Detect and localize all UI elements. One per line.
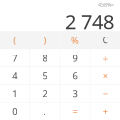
staticText: − [103,87,108,100]
button[interactable]: 7 [0,49,30,67]
staticText: 2 748 [65,8,114,35]
button[interactable]: × [90,67,120,84]
button[interactable]: 8 [30,49,60,67]
button[interactable]: ( [0,31,30,49]
button[interactable]: 9 [60,49,90,67]
staticText: × [103,70,108,82]
button[interactable]: − [90,85,120,102]
staticText: 7 [12,52,17,64]
button[interactable]: 6 [60,67,90,84]
staticText: . [43,105,46,118]
staticText: 2 [42,87,47,100]
button[interactable]: . [30,103,60,120]
staticText: ) [43,34,46,46]
button[interactable]: + [90,103,120,120]
button[interactable]: 2 [30,85,60,102]
staticText: ÷ [103,52,108,64]
button[interactable]: 1 [0,85,30,102]
staticText: 0 [12,105,17,118]
staticText: + [103,105,108,118]
button[interactable]: ) [30,31,60,49]
staticText: 458%= [98,1,114,8]
button[interactable]: = [60,103,90,120]
staticText: 1 [12,87,17,100]
staticText: 3 [73,87,78,100]
button[interactable]: % [60,31,90,49]
staticText: 9 [73,52,78,64]
button[interactable]: 0 [0,103,30,120]
staticText: 4 [12,70,17,82]
staticText: C [103,35,108,45]
staticText: ( [13,34,16,46]
button[interactable]: 5 [30,67,60,84]
staticText: 5 [42,70,47,82]
button[interactable]: 3 [60,85,90,102]
button[interactable]: ÷ [90,49,120,67]
button[interactable]: 4 [0,67,30,84]
staticText: % [71,34,79,46]
staticText: 8 [42,52,47,64]
button[interactable]: C [90,31,120,49]
staticText: = [73,105,78,118]
staticText: 6 [73,70,78,82]
